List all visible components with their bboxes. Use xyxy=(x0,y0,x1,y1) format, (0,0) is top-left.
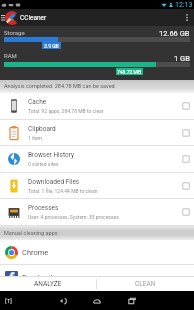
staticText: Clipboard xyxy=(28,125,56,133)
staticText: Processes xyxy=(28,204,59,212)
button[interactable]: Cache xyxy=(0,93,194,119)
staticText: 12.66 GB xyxy=(159,29,190,38)
button[interactable]: CLEAN xyxy=(97,277,194,291)
button[interactable]: Select Clipboard xyxy=(169,120,194,145)
staticText: 1 GB xyxy=(174,54,190,63)
staticText: CCleaner xyxy=(20,14,47,22)
button[interactable]: Back xyxy=(54,291,72,310)
staticText: CLEAN xyxy=(135,280,156,288)
staticText: ANALYZE xyxy=(34,280,62,288)
staticText: User: 4 processes, System: 33 processes xyxy=(28,214,119,220)
staticText: 0 visited sites xyxy=(28,161,59,167)
button[interactable]: Chrome xyxy=(0,240,194,264)
button[interactable]: Home xyxy=(88,291,106,310)
button[interactable]: Downloaded Files xyxy=(0,173,194,198)
staticText: Downloaded Files xyxy=(28,178,80,186)
staticText: Facebook xyxy=(22,273,55,282)
button[interactable]: Open navigation drawer xyxy=(0,9,6,26)
button[interactable]: Clipboard xyxy=(0,120,194,145)
staticText: [T] xyxy=(5,297,12,304)
button[interactable]: Select Browser History xyxy=(169,146,194,172)
staticText: Storage xyxy=(4,29,25,36)
button[interactable]: More options xyxy=(180,9,194,26)
button[interactable]: Recent apps xyxy=(123,291,141,310)
button[interactable]: Select Downloaded Files xyxy=(169,173,194,198)
button[interactable]: Select Cache xyxy=(169,93,194,119)
button[interactable]: Select Processes xyxy=(169,199,194,225)
staticText: 12:13 xyxy=(175,1,193,9)
button[interactable]: Browser History xyxy=(0,146,194,172)
staticText: Analysis completed. 284.78 MB can be sav… xyxy=(4,83,115,89)
button[interactable]: Facebook xyxy=(0,265,194,289)
staticText: Chrome xyxy=(22,248,49,257)
staticText: Manual cleaning apps xyxy=(4,230,58,236)
staticText: 1 item xyxy=(28,135,42,141)
staticText: 3.9 GB xyxy=(44,43,59,49)
button[interactable]: Processes xyxy=(0,199,194,225)
staticText: Total: 92 apps, 284.78 MB to clear xyxy=(28,108,104,114)
staticText: Browser History xyxy=(28,151,75,159)
staticText: 748.72 MB xyxy=(117,69,142,75)
button[interactable]: ANALYZE xyxy=(0,277,96,291)
staticText: RAM xyxy=(4,52,17,59)
staticText: Total: 1 file, 124.44 MB to clean xyxy=(28,188,98,194)
staticText: Cache xyxy=(28,98,47,106)
